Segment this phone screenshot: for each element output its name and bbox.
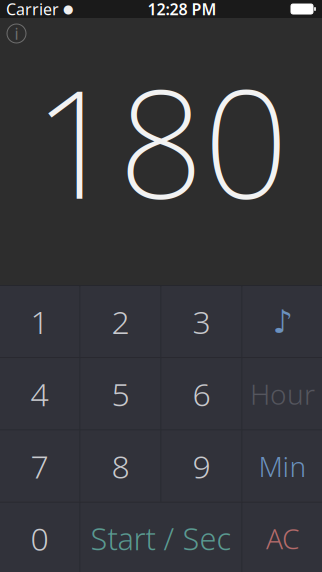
button[interactable]: AC: [242, 503, 322, 572]
staticText: 180: [33, 42, 288, 240]
staticText: Carrier: [6, 0, 59, 20]
staticText: ●: [63, 2, 73, 16]
button[interactable]: Hour: [242, 358, 322, 429]
button[interactable]: ♪: [242, 286, 322, 357]
button[interactable]: Min: [242, 430, 322, 502]
staticText: 5: [111, 373, 129, 415]
staticText: 12:28 PM: [147, 0, 216, 20]
button[interactable]: 4: [0, 358, 79, 429]
button[interactable]: 6: [161, 358, 241, 429]
staticText: 2: [111, 300, 129, 343]
button[interactable]: 1: [0, 286, 79, 357]
button[interactable]: 8: [80, 430, 160, 502]
staticText: 1: [30, 300, 48, 343]
button[interactable]: 0: [0, 503, 79, 572]
button[interactable]: 5: [80, 358, 160, 429]
button[interactable]: Start / Sec: [80, 503, 241, 572]
staticText: 7: [30, 445, 48, 487]
staticText: Hour: [250, 375, 315, 412]
staticText: AC: [266, 520, 299, 557]
staticText: 3: [192, 300, 210, 343]
staticText: Start / Sec: [90, 518, 231, 559]
staticText: 4: [30, 373, 48, 415]
staticText: Min: [258, 447, 306, 485]
staticText: [59, 0, 63, 20]
button[interactable]: 7: [0, 430, 79, 502]
staticText: 0: [30, 517, 48, 560]
button[interactable]: 2: [80, 286, 160, 357]
button[interactable]: 9: [161, 430, 241, 502]
button[interactable]: 3: [161, 286, 241, 357]
staticText: 6: [192, 373, 210, 415]
staticText: 8: [111, 445, 129, 487]
staticText: ♪: [272, 303, 292, 340]
staticText: i: [14, 23, 18, 44]
button[interactable]: Info: [7, 24, 26, 43]
staticText: 9: [192, 445, 210, 487]
